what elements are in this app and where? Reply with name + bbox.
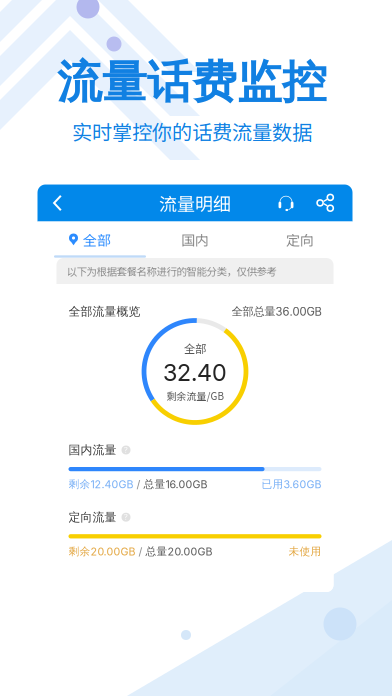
button[interactable]: 定向 xyxy=(247,221,352,257)
staticText: 全部 xyxy=(83,229,111,250)
staticText: 以下为根据套餐名称进行的智能分类，仅供参考 xyxy=(66,263,276,279)
staticText: 流量明细 xyxy=(159,190,231,216)
staticText: 32.40 xyxy=(163,358,227,386)
staticText: / xyxy=(133,478,143,491)
staticText: / xyxy=(135,545,145,558)
staticText: 国内 xyxy=(181,229,209,250)
staticText: 全部 xyxy=(184,340,206,356)
staticText: 定向流量 xyxy=(68,510,116,525)
button[interactable]: 国内 xyxy=(142,221,247,257)
button[interactable]: Share xyxy=(311,189,339,217)
staticText: ? xyxy=(124,446,128,454)
staticText: 实时掌控你的话费流量数据 xyxy=(72,116,312,146)
staticText: 总量20.00GB xyxy=(145,545,212,558)
staticText: 国内流量 xyxy=(68,442,116,457)
staticText: 剩余20.00GB xyxy=(68,545,135,558)
button[interactable]: 全部 xyxy=(37,221,142,257)
staticText: 定向 xyxy=(286,229,314,250)
staticText: 剩余流量/GB xyxy=(166,389,223,403)
staticText: 总量16.00GB xyxy=(143,477,207,491)
staticText: 全部总量36.00GB xyxy=(231,304,321,318)
button[interactable]: Back xyxy=(37,184,74,221)
button[interactable]: Customer service xyxy=(273,190,298,216)
staticText: 全部流量概览 xyxy=(68,304,140,319)
staticText: ? xyxy=(124,513,128,522)
staticText: 已用3.60GB xyxy=(261,477,321,491)
staticText: 流量话费监控 xyxy=(57,54,327,110)
staticText: 未使用 xyxy=(288,545,321,558)
staticText: 剩余12.40GB xyxy=(68,477,133,491)
